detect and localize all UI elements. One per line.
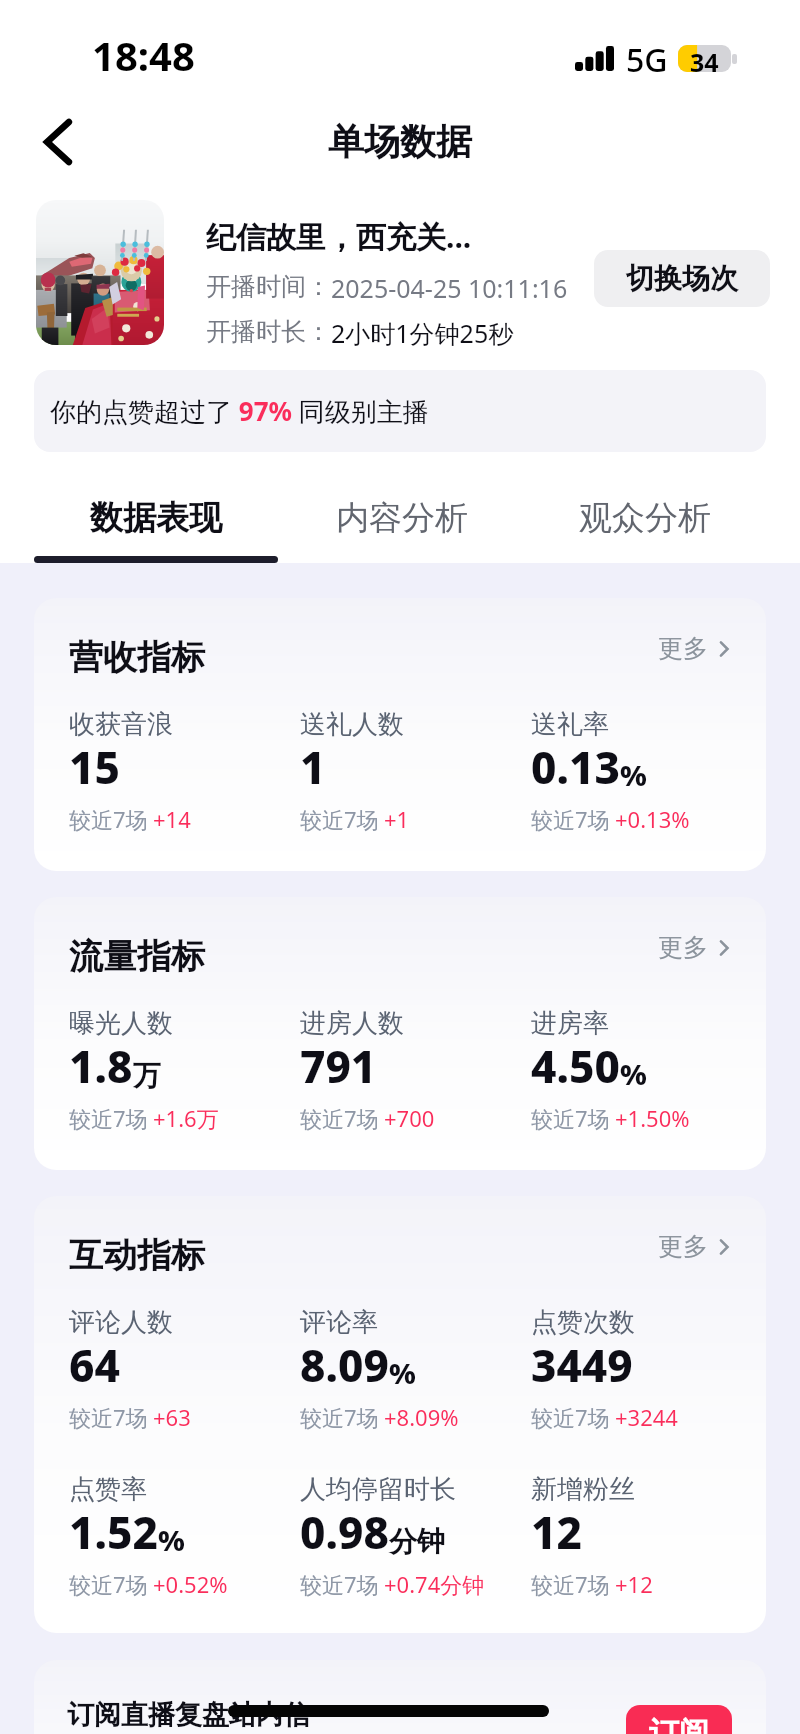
staticText: 较近7场 (300, 1569, 379, 1599)
staticText: 送礼率 (531, 708, 609, 741)
staticText: 收获音浪 (69, 708, 173, 741)
staticText: 2小时1分钟25秒 (331, 316, 514, 350)
staticText: 互动指标 (69, 1234, 205, 1277)
staticText: 较近7场 (300, 1402, 379, 1432)
staticText: % (158, 1520, 185, 1559)
staticText: 更多 (658, 932, 708, 963)
staticText: % (620, 755, 647, 794)
staticText: +8.09% (384, 1402, 459, 1432)
staticText: 较近7场 (69, 804, 148, 834)
staticText: +1.50% (615, 1103, 690, 1133)
staticText: 纪信故里，西充关... (206, 216, 472, 257)
staticText: 更多 (658, 1231, 708, 1262)
staticText: 新增粉丝 (531, 1473, 635, 1506)
staticText: 更多 (658, 633, 708, 664)
staticText: 较近7场 (69, 1103, 148, 1133)
staticText: 单场数据 (328, 119, 472, 164)
staticText: 较近7场 (69, 1402, 148, 1432)
staticText: 8.09 (300, 1335, 389, 1395)
button[interactable]: 数据表现 (46, 485, 266, 551)
staticText: 1 (300, 737, 326, 797)
staticText: +12 (615, 1569, 653, 1599)
button[interactable]: 内容分析 (292, 485, 512, 551)
button[interactable]: Back (26, 110, 90, 174)
staticText: 切换场次 (626, 261, 738, 296)
staticText: +14 (153, 804, 191, 834)
staticText: 分钟 (389, 1524, 445, 1559)
staticText: 15 (69, 737, 120, 797)
staticText: 开播时间： (206, 271, 331, 302)
staticText: 送礼人数 (300, 708, 404, 741)
button[interactable]: 更多 (644, 920, 749, 975)
staticText: 进房率 (531, 1007, 609, 1040)
staticText: 数据表现 (90, 497, 222, 539)
button[interactable]: 更多 (644, 621, 749, 676)
staticText: 1.8 (69, 1036, 133, 1096)
staticText: 5G (626, 38, 668, 82)
staticText: 1.52 (69, 1502, 158, 1562)
staticText: 万 (133, 1058, 161, 1093)
staticText: +1 (384, 804, 410, 834)
staticText: 2025-04-25 10:11:16 (331, 271, 568, 305)
staticText: 较近7场 (531, 804, 610, 834)
staticText: 34 (690, 45, 719, 72)
staticText: 点赞率 (69, 1473, 147, 1506)
staticText: 较近7场 (531, 1103, 610, 1133)
staticText: 订阅 (649, 1714, 709, 1734)
staticText: 3449 (531, 1335, 633, 1395)
staticText: 流量指标 (69, 935, 205, 978)
staticText: 评论人数 (69, 1306, 173, 1339)
staticText: % (389, 1353, 416, 1392)
button[interactable]: 更多 (644, 1219, 749, 1274)
staticText: 791 (300, 1036, 377, 1096)
staticText: 较近7场 (300, 1103, 379, 1133)
staticText: 开播时长： (206, 316, 331, 347)
staticText: 曝光人数 (69, 1007, 173, 1040)
staticText: 评论率 (300, 1306, 378, 1339)
staticText: 较近7场 (531, 1569, 610, 1599)
button[interactable]: 切换场次 (594, 250, 770, 307)
staticText: 较近7场 (300, 804, 379, 834)
staticText: +0.52% (153, 1569, 228, 1599)
staticText: 你的点赞超过了 97% 同级别主播 (50, 393, 429, 429)
staticText: 点赞次数 (531, 1306, 635, 1339)
staticText: 12 (531, 1502, 582, 1562)
staticText: 64 (69, 1335, 120, 1395)
staticText: +3244 (615, 1402, 678, 1432)
button[interactable]: 观众分析 (535, 485, 755, 551)
staticText: +63 (153, 1402, 191, 1432)
staticText: 较近7场 (531, 1402, 610, 1432)
staticText: % (620, 1054, 647, 1093)
staticText: 较近7场 (69, 1569, 148, 1599)
staticText: 营收指标 (69, 636, 205, 679)
staticText: 4.50 (531, 1036, 620, 1096)
staticText: +700 (384, 1103, 435, 1133)
staticText: 0.98 (300, 1502, 389, 1562)
staticText: +1.6万 (153, 1103, 219, 1133)
staticText: 内容分析 (336, 497, 468, 539)
staticText: 订阅直播复盘站内信 (67, 1698, 310, 1732)
button[interactable]: 订阅 (626, 1705, 732, 1734)
staticText: +0.74分钟 (384, 1569, 485, 1599)
staticText: 人均停留时长 (300, 1473, 456, 1506)
staticText: +0.13% (615, 804, 690, 834)
staticText: 18:48 (92, 28, 195, 82)
staticText: 观众分析 (579, 497, 711, 539)
staticText: 0.13 (531, 737, 620, 797)
staticText: 进房人数 (300, 1007, 404, 1040)
